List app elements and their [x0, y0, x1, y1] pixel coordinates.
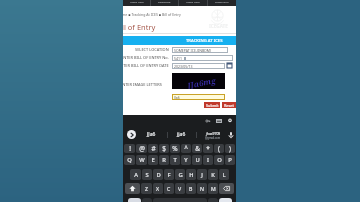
- button[interactable]: Shift: [125, 183, 140, 194]
- staticText: me ▪ Tracking At ICES ▪ Bill of Entry: [123, 12, 181, 17]
- button[interactable]: Backspace: [219, 183, 234, 194]
- button[interactable]: Z: [141, 183, 152, 194]
- button[interactable]: Downloads: [151, 0, 178, 6]
- button[interactable]: Period: [208, 198, 218, 202]
- staticText: jhas9709: [206, 131, 221, 136]
- button[interactable]: R: [159, 155, 169, 165]
- button[interactable]: L: [219, 169, 229, 180]
- staticText: ENTER BILL OF ENTRY DATE: [123, 63, 169, 68]
- button[interactable]: &: [192, 144, 202, 153]
- button[interactable]: %: [170, 144, 180, 153]
- button[interactable]: Pick date: [227, 63, 232, 68]
- button[interactable]: Useful Links: [179, 0, 207, 6]
- staticText: L: [222, 171, 226, 179]
- button[interactable]: Symbols: [128, 198, 141, 202]
- button[interactable]: F: [164, 169, 174, 180]
- button[interactable]: ): [225, 144, 235, 153]
- button[interactable]: @: [136, 144, 147, 153]
- staticText: &: [195, 144, 200, 153]
- staticText: %: [172, 144, 178, 153]
- staticText: Y: [184, 156, 188, 164]
- button[interactable]: C: [164, 183, 174, 194]
- staticText: I: [207, 156, 209, 164]
- button[interactable]: J: [197, 169, 207, 180]
- button[interactable]: Q: [124, 155, 135, 165]
- button[interactable]: U: [192, 155, 202, 165]
- button[interactable]: W: [136, 155, 147, 165]
- button[interactable]: V: [175, 183, 185, 194]
- button[interactable]: Useful Links: [123, 0, 150, 6]
- staticText: $: [162, 144, 166, 153]
- button[interactable]: $: [159, 144, 169, 153]
- button[interactable]: Comma: [142, 198, 152, 202]
- staticText: (: [218, 144, 220, 153]
- button[interactable]: 2023/05/13: [172, 63, 225, 69]
- staticText: V: [178, 185, 182, 192]
- button[interactable]: 5411: [172, 55, 233, 61]
- button[interactable]: *: [203, 144, 213, 153]
- staticText: SELECT LOCATION: [135, 47, 169, 52]
- button[interactable]: Passwords: [205, 118, 211, 124]
- staticText: E: [151, 156, 155, 164]
- staticText: O: [217, 156, 222, 164]
- button[interactable]: Voice input: [227, 131, 235, 139]
- button[interactable]: O: [214, 155, 224, 165]
- button[interactable]: Y: [181, 155, 191, 165]
- button[interactable]: Addresses: [227, 118, 233, 124]
- staticText: *: [206, 144, 210, 153]
- staticText: D: [156, 171, 161, 179]
- staticText: A: [134, 171, 138, 179]
- staticText: Submit: [206, 103, 219, 108]
- staticText: @gmail.com: [205, 136, 221, 140]
- staticText: X: [156, 185, 160, 192]
- button[interactable]: (: [214, 144, 224, 153]
- button[interactable]: K: [208, 169, 218, 180]
- button[interactable]: I: [203, 155, 213, 165]
- button[interactable]: jhas9709: [199, 130, 227, 141]
- button[interactable]: ^: [181, 144, 191, 153]
- button[interactable]: A: [130, 169, 141, 180]
- button[interactable]: Enter: [219, 198, 232, 202]
- staticText: Single Form: [215, 0, 229, 3]
- button[interactable]: P: [225, 155, 235, 165]
- staticText: #: [151, 144, 156, 153]
- button[interactable]: N: [197, 183, 207, 194]
- button[interactable]: More suggestions: [127, 130, 136, 139]
- button[interactable]: X: [153, 183, 163, 194]
- staticText: ^: [184, 144, 188, 153]
- button[interactable]: T: [170, 155, 180, 165]
- staticText: J: [201, 171, 203, 179]
- staticText: !: [129, 144, 131, 153]
- button[interactable]: B: [186, 183, 196, 194]
- staticText: ): [229, 144, 231, 153]
- staticText: Useful Links: [186, 0, 200, 3]
- button[interactable]: !: [124, 144, 135, 153]
- button[interactable]: Payment methods: [216, 118, 222, 124]
- staticText: H: [189, 171, 194, 179]
- staticText: N: [200, 185, 204, 192]
- button[interactable]: jja6: [171, 130, 191, 139]
- staticText: B: [189, 185, 193, 192]
- button[interactable]: Submit: [204, 102, 220, 108]
- button[interactable]: JJa6: [141, 130, 161, 139]
- button[interactable]: SOMEPAT ICE-(INBDM): [172, 47, 228, 53]
- button[interactable]: H: [186, 169, 196, 180]
- staticText: ENTER IMAGE LETTERS: [123, 82, 162, 87]
- button[interactable]: E: [148, 155, 158, 165]
- staticText: G: [178, 171, 183, 179]
- staticText: R: [162, 156, 166, 164]
- button[interactable]: D: [153, 169, 163, 180]
- staticText: SOMEPAT ICE-(INBDM): [174, 48, 211, 53]
- button[interactable]: Single Form: [208, 0, 236, 6]
- staticText: C: [167, 185, 171, 192]
- staticText: ll of Entry: [123, 22, 156, 32]
- staticText: U: [195, 156, 200, 164]
- button[interactable]: S: [142, 169, 152, 180]
- button[interactable]: M: [208, 183, 218, 194]
- button[interactable]: #: [148, 144, 158, 153]
- button[interactable]: G: [175, 169, 185, 180]
- button[interactable]: Reset: [222, 102, 236, 108]
- staticText: Reset: [224, 103, 234, 108]
- staticText: JJa6: [147, 131, 156, 138]
